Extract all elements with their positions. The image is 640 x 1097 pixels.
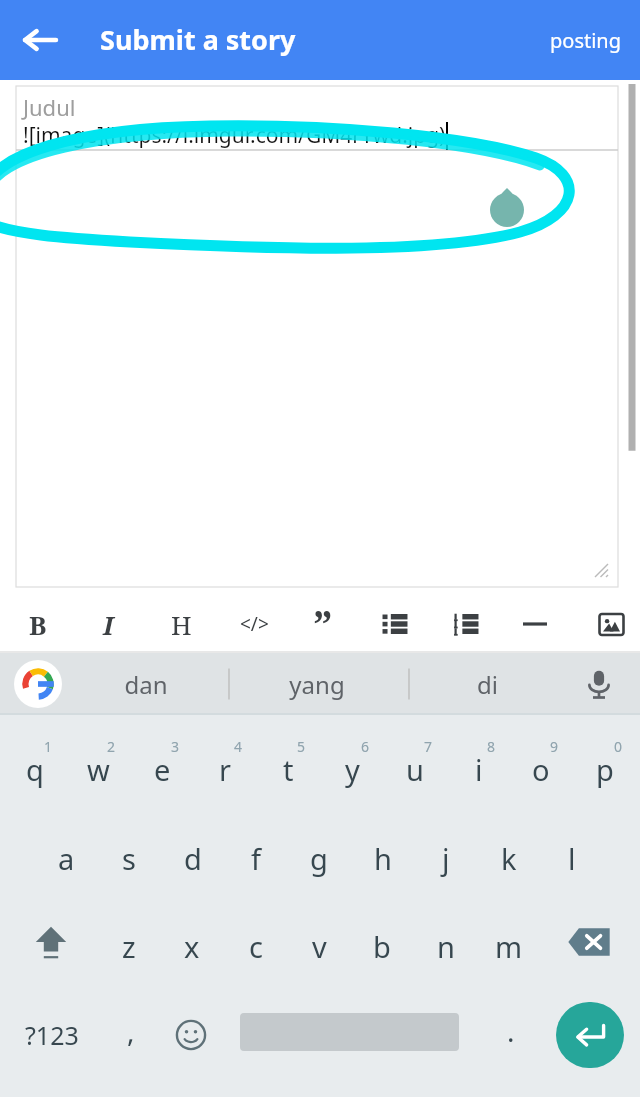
staticText: 9 [550, 737, 559, 756]
staticText: B [29, 607, 47, 642]
staticText: v [312, 927, 327, 966]
button[interactable]: a [35, 810, 97, 898]
staticText: </> [240, 611, 269, 637]
button[interactable]: j [415, 810, 477, 898]
staticText: ?123 [25, 1018, 79, 1052]
button[interactable]: posting [542, 17, 630, 64]
button[interactable]: Shift [12, 898, 90, 986]
staticText: w [87, 750, 110, 789]
staticText: posting [550, 27, 622, 54]
button[interactable]: Backspace [550, 898, 628, 986]
button[interactable]: Enter [556, 1002, 624, 1068]
button[interactable]: g [288, 810, 350, 898]
staticText: dan [124, 668, 168, 701]
button[interactable]: d [162, 810, 224, 898]
staticText: k [501, 839, 517, 878]
button[interactable]: z [98, 898, 160, 986]
staticText: I [103, 607, 114, 642]
button[interactable]: Google [14, 660, 62, 708]
staticText: . [507, 1012, 515, 1050]
staticText: l [568, 839, 576, 878]
button[interactable]: l [541, 810, 603, 898]
staticText: f [251, 839, 261, 878]
staticText: 5 [297, 737, 306, 756]
staticText: q [26, 750, 44, 789]
button[interactable]: Heading [151, 595, 211, 653]
button[interactable]: Bulleted list [365, 595, 425, 653]
staticText: Judul [23, 92, 76, 122]
button[interactable]: Back [8, 8, 72, 72]
staticText: i [475, 750, 483, 789]
staticText: 7 [424, 737, 433, 756]
button[interactable]: v [288, 898, 350, 986]
staticText: c [249, 927, 263, 966]
staticText: ” [313, 597, 333, 651]
button[interactable]: r [194, 721, 256, 810]
button[interactable]: e [131, 721, 193, 810]
button[interactable]: Numbered list [436, 595, 496, 653]
button[interactable]: s [98, 810, 160, 898]
button[interactable]: t [257, 721, 319, 810]
button[interactable]: u [384, 721, 446, 810]
button[interactable]: k [478, 810, 540, 898]
staticText: n [437, 927, 455, 966]
button[interactable]: Voice input [572, 657, 626, 711]
staticText: z [122, 927, 136, 966]
staticText: x [184, 927, 200, 966]
button[interactable]: Emoji [160, 986, 222, 1083]
staticText: g [310, 839, 328, 878]
button[interactable]: Insert image [581, 595, 640, 653]
staticText: H [171, 607, 192, 642]
staticText: di [477, 668, 498, 701]
staticText: a [58, 839, 75, 878]
staticText: r [219, 750, 231, 789]
staticText: d [184, 839, 202, 878]
staticText: 4 [234, 737, 243, 756]
staticText: 6 [361, 737, 370, 756]
staticText: o [532, 750, 550, 789]
staticText: 1 [44, 737, 53, 756]
staticText: 8 [487, 737, 496, 756]
button[interactable]: Horizontal rule [505, 595, 565, 653]
staticText: yang [289, 668, 345, 701]
button[interactable]: Code [224, 595, 284, 653]
button[interactable]: Italic [78, 595, 138, 653]
staticText: m [495, 927, 523, 966]
staticText: b [373, 927, 391, 966]
button[interactable]: w [67, 721, 129, 810]
staticText: , [127, 1012, 135, 1050]
button[interactable]: n [415, 898, 477, 986]
button[interactable]: , [100, 986, 162, 1083]
staticText: s [122, 839, 136, 878]
button[interactable]: o [510, 721, 572, 810]
staticText: j [442, 839, 450, 878]
button[interactable]: c [225, 898, 287, 986]
button[interactable]: x [161, 898, 223, 986]
staticText: y [345, 750, 360, 789]
button[interactable]: f [225, 810, 287, 898]
button[interactable]: p [574, 721, 636, 810]
button[interactable]: q [4, 721, 66, 810]
staticText: e [154, 750, 171, 789]
staticText: h [374, 839, 392, 878]
staticText: 0 [614, 737, 623, 756]
button[interactable]: yang [247, 653, 387, 715]
staticText: Submit a story [100, 21, 296, 58]
staticText: ![image](https://i.imgur.com/GM4rYwd.jpg… [23, 121, 446, 150]
button[interactable]: y [321, 721, 383, 810]
button[interactable]: b [351, 898, 413, 986]
button[interactable]: ?123 [6, 986, 98, 1083]
button[interactable]: m [478, 898, 540, 986]
button[interactable]: dan [76, 653, 216, 715]
staticText: t [283, 750, 294, 789]
staticText: 3 [171, 737, 180, 756]
button[interactable]: i [447, 721, 509, 810]
button[interactable]: Quote [293, 595, 353, 653]
button[interactable]: di [417, 653, 557, 715]
staticText: u [406, 750, 424, 789]
button[interactable]: . [480, 986, 542, 1083]
button[interactable]: Bold [8, 595, 68, 653]
button[interactable]: h [352, 810, 414, 898]
staticText: p [596, 750, 614, 789]
